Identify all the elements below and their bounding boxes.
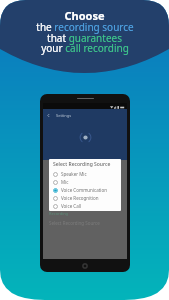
button[interactable]: Voice Communication bbox=[49, 186, 121, 194]
staticText: Select Recording Source bbox=[49, 220, 100, 226]
staticText: Voice Communication bbox=[61, 187, 108, 193]
staticText: Voice Call bbox=[61, 203, 82, 209]
staticText: Settings bbox=[56, 113, 72, 118]
button[interactable]: Speaker Mic bbox=[49, 170, 121, 178]
button[interactable]: Voice Recognition bbox=[49, 194, 121, 202]
staticText: Select Recording Source bbox=[53, 161, 111, 168]
staticText: Recording bbox=[49, 211, 69, 216]
button[interactable]: Mic bbox=[49, 178, 121, 186]
staticText: Choose bbox=[64, 8, 105, 23]
staticText: the recording source bbox=[36, 20, 134, 34]
button[interactable]: Voice Call bbox=[49, 202, 121, 210]
staticText: that guarantees bbox=[47, 31, 122, 45]
staticText: your call recording bbox=[41, 41, 129, 55]
staticText: Speaker Mic bbox=[61, 171, 87, 177]
staticText: Mic bbox=[61, 179, 69, 185]
button[interactable]: Back bbox=[43, 109, 53, 121]
button[interactable]: Back bbox=[43, 109, 127, 121]
staticText: Voice Recognition bbox=[61, 195, 99, 201]
